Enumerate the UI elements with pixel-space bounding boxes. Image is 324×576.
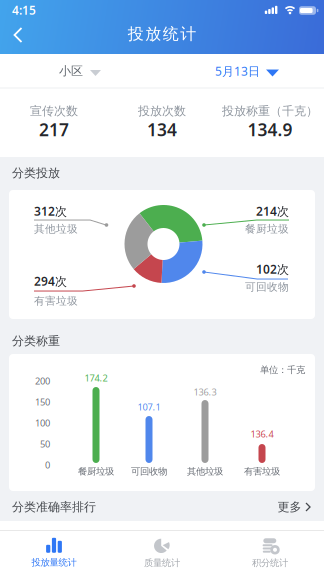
staticText: 136.4 (250, 428, 273, 440)
button[interactable]: 更多 (277, 492, 310, 522)
staticText: 312次 (34, 203, 67, 219)
staticText: 294次 (34, 273, 67, 289)
button[interactable]: 小区 (20, 54, 140, 88)
staticText: 可回收物 (245, 280, 289, 293)
staticText: 134 (147, 118, 177, 141)
staticText: 134.9 (247, 118, 292, 141)
staticText: 其他垃圾 (34, 222, 78, 235)
staticText: 分类准确率排行 (12, 500, 96, 514)
button[interactable]: 5月13日 (187, 54, 307, 88)
staticText: 分类称重 (12, 334, 60, 348)
staticText: 200 (35, 375, 50, 387)
staticText: 有害垃圾 (34, 294, 78, 307)
staticText: 174.2 (84, 372, 107, 384)
staticText: 投放量统计 (31, 557, 76, 568)
staticText: 投放次数 (138, 104, 186, 118)
button[interactable]: 投放量统计 (4, 531, 104, 575)
staticText: 214次 (256, 203, 289, 219)
staticText: 其他垃圾 (187, 466, 223, 477)
staticText: 4:15 (12, 2, 36, 18)
staticText: 宣传次数 (30, 104, 78, 118)
staticText: 质量统计 (144, 557, 180, 569)
staticText: 分类投放 (12, 166, 60, 180)
staticText: 100 (35, 417, 50, 429)
button[interactable]: 积分统计 (220, 531, 320, 575)
staticText: 有害垃圾 (244, 466, 280, 477)
staticText: 136.3 (193, 386, 216, 398)
staticText: 更多 (277, 500, 301, 514)
staticText: 217 (39, 118, 69, 141)
staticText: 积分统计 (252, 557, 288, 569)
staticText: 107.1 (137, 401, 160, 413)
staticText: 餐厨垃圾 (245, 222, 289, 235)
staticText: 单位：千克 (260, 364, 305, 376)
staticText: 0 (45, 459, 50, 471)
staticText: 5月13日 (215, 63, 260, 79)
button[interactable]: 质量统计 (112, 531, 212, 575)
staticText: 投放统计 (128, 24, 196, 44)
staticText: 投放称重（千克） (222, 104, 318, 118)
staticText: 餐厨垃圾 (78, 466, 114, 477)
staticText: 50 (40, 438, 50, 450)
staticText: 可回收物 (131, 466, 167, 477)
staticText: 150 (35, 396, 50, 408)
button[interactable] (13, 27, 23, 43)
staticText: 102次 (256, 261, 289, 277)
staticText: 小区 (59, 64, 83, 78)
